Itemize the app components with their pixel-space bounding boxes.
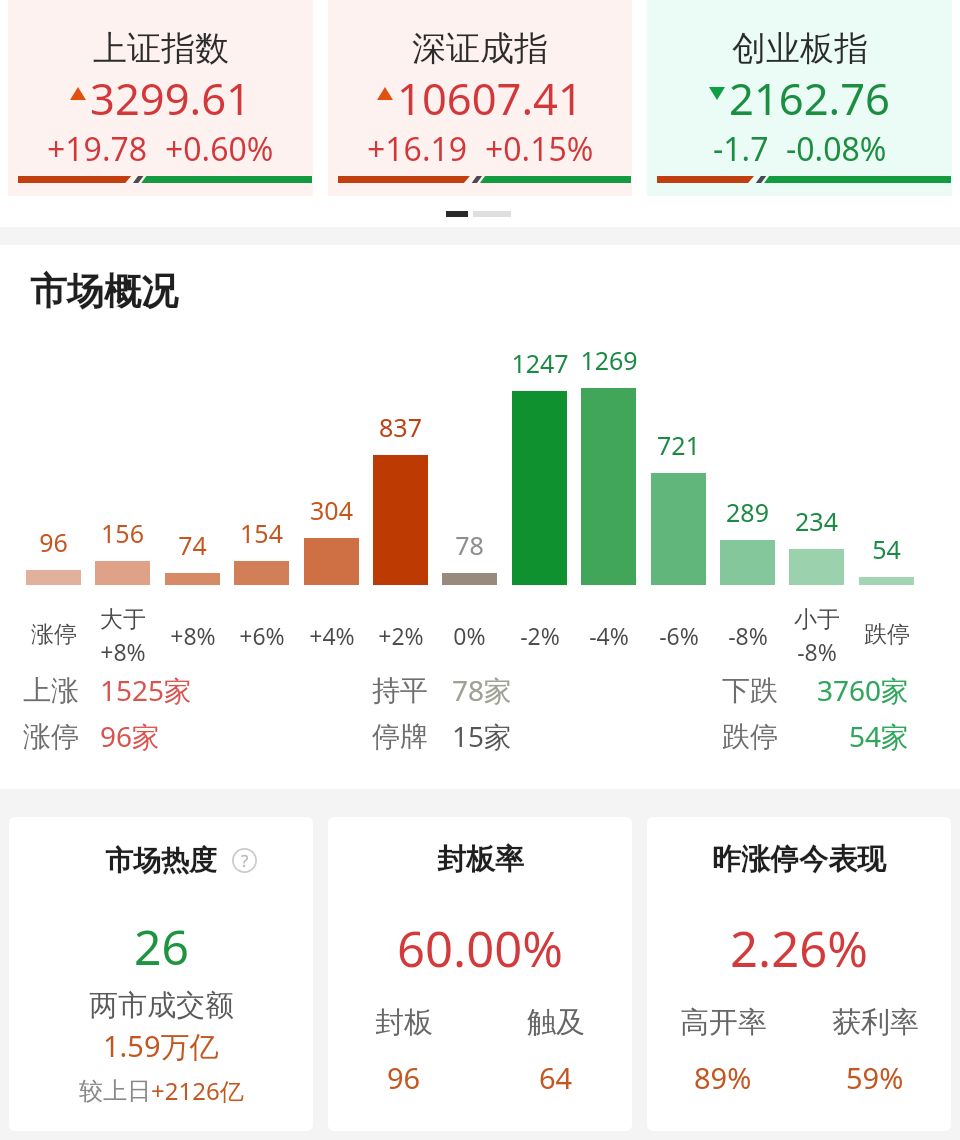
staticText: 3299.61 [90,68,251,118]
staticText: 市场热度 [105,843,217,878]
staticText: 837 [379,410,422,444]
staticText: +19.78 [47,127,148,163]
staticText: 304 [310,493,353,527]
staticText: 78 [455,528,484,562]
staticText: 市场概况 [30,268,178,315]
staticText: 64 [539,1058,573,1097]
staticText: 2162.76 [729,68,890,118]
staticText: 下跌 [722,673,778,708]
staticText: -4% [589,620,629,651]
staticText: 0% [453,620,486,651]
staticText: +2% [378,620,424,651]
staticText: 59% [846,1058,904,1097]
staticText: +8% [100,636,146,667]
button[interactable]: 市场热度 [9,817,313,1131]
staticText: 深证成指 [412,27,548,70]
staticText: 289 [726,495,769,529]
staticText: 停牌 [372,719,428,754]
staticText: 跌停 [722,719,778,754]
staticText: -6% [659,620,699,651]
staticText: +6% [239,620,285,651]
staticText: 上涨 [23,673,79,708]
staticText: 2.26% [730,915,868,982]
button[interactable]: 持平 [372,668,560,712]
staticText: 高开率 [680,1004,767,1041]
staticText: 26 [134,914,189,979]
staticText: 创业板指 [732,27,868,70]
staticText: -0.08% [786,127,887,163]
staticText: 封板 [375,1004,433,1041]
button[interactable]: 停牌 [372,714,560,758]
staticText: 10607.41 [397,68,583,118]
staticText: 78家 [452,671,513,709]
staticText: 15家 [452,717,513,755]
staticText: 涨停 [31,620,77,649]
staticText: 54家 [849,717,910,755]
staticText: 上证指数 [93,27,229,70]
staticText: 96 [39,525,68,559]
staticText: 两市成交额 [89,987,234,1024]
button[interactable]: 涨停 [23,714,230,758]
staticText: 3760家 [817,671,910,709]
staticText: 89% [694,1058,752,1097]
button[interactable]: Page indicator, page 1 of 2 [436,200,521,228]
staticText: -8% [797,636,837,667]
staticText: 234 [795,504,838,538]
button[interactable]: Market breadth distribution chart [20,330,940,660]
staticText: 封板率 [437,841,524,878]
button[interactable]: Help about market heat [232,848,257,873]
button[interactable]: 创业板指 [647,0,952,196]
button[interactable]: 封板率 [328,817,632,1131]
button[interactable]: 下跌 [722,668,910,712]
staticText: +0.60% [165,127,274,163]
staticText: 大于 [100,605,146,634]
staticText: 较上日 [79,1076,151,1106]
staticText: 获利率 [832,1004,919,1041]
staticText: +8% [170,620,216,651]
staticText: +4% [309,620,355,651]
staticText: 触及 [527,1004,585,1041]
staticText: +0.15% [485,127,594,163]
button[interactable]: 跌停 [722,714,910,758]
staticText: 74 [178,528,207,562]
staticText: 昨涨停今表现 [712,841,886,878]
button[interactable]: 深证成指 [328,0,632,196]
button[interactable]: 上涨 [23,668,230,712]
staticText: 96家 [100,717,161,755]
button[interactable]: 市场概况 [30,265,190,317]
staticText: 156 [101,516,144,550]
staticText: 1247 [511,346,569,380]
staticText: 跌停 [864,620,910,649]
staticText: 持平 [372,673,428,708]
staticText: +16.19 [367,127,468,163]
staticText: +2126亿 [151,1074,244,1107]
button[interactable]: 上证指数 [8,0,313,196]
staticText: -8% [728,620,768,651]
staticText: ? [241,849,249,872]
button[interactable]: 昨涨停今表现 [647,817,951,1131]
staticText: -2% [520,620,560,651]
staticText: -1.7 [713,127,769,163]
staticText: 小于 [794,605,840,634]
staticText: 1.59万亿 [103,1026,219,1066]
staticText: 1269 [580,343,638,377]
staticText: 721 [657,428,700,462]
staticText: 96 [387,1058,421,1097]
staticText: 54 [872,532,901,566]
staticText: 60.00% [397,915,563,982]
staticText: 1525家 [100,671,193,709]
staticText: 涨停 [23,719,79,754]
staticText: 154 [240,516,283,550]
